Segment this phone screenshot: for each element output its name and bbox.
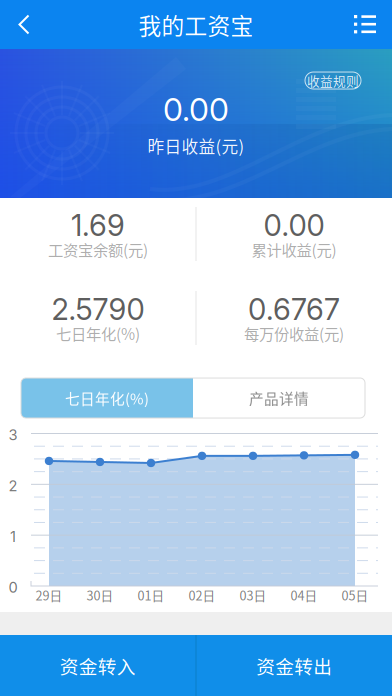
staticText: 每万份收益(元) xyxy=(244,322,344,344)
staticText: 资金转入 xyxy=(60,652,136,679)
button[interactable]: 产品详情 xyxy=(193,378,365,418)
staticText: 七日年化(%) xyxy=(56,322,140,344)
staticText: 1 xyxy=(10,528,16,545)
button[interactable]: 七日年化(%) xyxy=(21,378,193,418)
button[interactable]: 资金转入 xyxy=(0,635,195,696)
staticText: 1.69 xyxy=(71,208,125,243)
staticText: 0.00 xyxy=(163,90,229,129)
staticText: 昨日收益(元) xyxy=(147,134,244,158)
button[interactable]: 返回 xyxy=(0,0,48,49)
staticText: 2 xyxy=(8,477,17,495)
staticText: 2.5790 xyxy=(51,292,144,327)
button[interactable]: 交易记录 xyxy=(338,0,392,49)
staticText: 七日年化(%) xyxy=(65,387,149,409)
staticText: 收益规则 xyxy=(307,71,359,90)
staticText: 3 xyxy=(8,426,17,444)
staticText: 04日 xyxy=(290,586,317,604)
staticText: 0.6767 xyxy=(248,292,340,327)
button[interactable]: 收益规则 xyxy=(305,72,361,89)
staticText: 累计收益(元) xyxy=(251,238,336,260)
staticText: 工资宝余额(元) xyxy=(48,238,148,260)
staticText: 0.00 xyxy=(263,208,324,243)
staticText: 产品详情 xyxy=(249,387,309,409)
staticText: 05日 xyxy=(341,586,368,604)
staticText: 0 xyxy=(8,579,17,596)
staticText: 02日 xyxy=(188,586,215,604)
staticText: 30日 xyxy=(86,586,113,604)
staticText: 资金转出 xyxy=(256,652,332,679)
staticText: 我的工资宝 xyxy=(138,8,253,41)
staticText: 01日 xyxy=(137,586,164,604)
staticText: 29日 xyxy=(35,586,62,604)
staticText: 03日 xyxy=(239,586,266,604)
button[interactable]: 资金转出 xyxy=(197,635,392,696)
